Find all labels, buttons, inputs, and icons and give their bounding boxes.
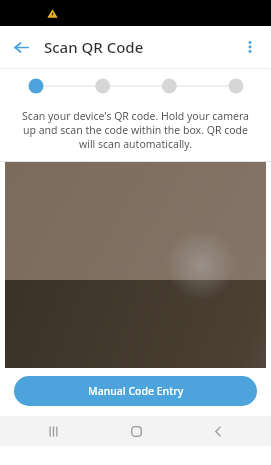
staticText: Scan QR Code bbox=[44, 37, 144, 57]
button[interactable]: Back bbox=[188, 416, 248, 446]
button[interactable]: Recent apps bbox=[23, 416, 83, 446]
button[interactable]: Manual Code Entry bbox=[14, 376, 257, 406]
staticText: Manual Code Entry bbox=[88, 384, 184, 398]
button[interactable]: Back bbox=[0, 26, 42, 68]
button[interactable]: Home bbox=[106, 416, 166, 446]
button[interactable]: More options bbox=[229, 26, 271, 68]
staticText: Scan your device's QR code. Hold your ca… bbox=[16, 109, 255, 151]
